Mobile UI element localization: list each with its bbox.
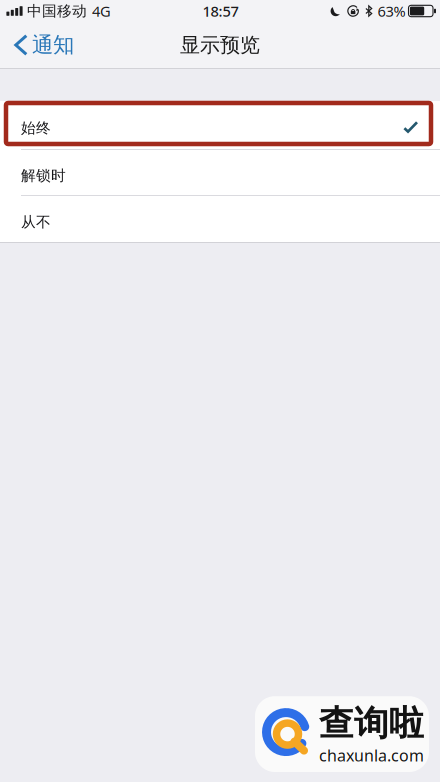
staticText: 中国移动: [27, 2, 87, 20]
staticText: 显示预览: [180, 33, 260, 57]
staticText: 通知: [32, 32, 74, 58]
button[interactable]: 解锁时: [0, 150, 440, 195]
staticText: 查询啦: [319, 702, 424, 745]
staticText: 始终: [21, 119, 51, 137]
staticText: 从不: [21, 213, 51, 231]
staticText: chaxunla.com: [319, 745, 424, 766]
button[interactable]: 始终: [0, 101, 440, 149]
staticText: 18:57: [203, 1, 239, 21]
button[interactable]: 通知: [0, 23, 84, 67]
staticText: 63%: [377, 1, 405, 21]
staticText: 解锁时: [21, 166, 66, 184]
staticText: 4G: [92, 1, 111, 21]
button[interactable]: 从不: [0, 196, 440, 242]
